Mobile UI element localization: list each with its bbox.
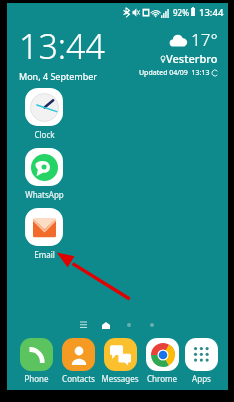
- button[interactable]: WhatsApp: [21, 148, 67, 200]
- staticText: Chrome: [147, 373, 177, 384]
- button[interactable]: Email: [21, 208, 67, 260]
- staticText: Contacts: [62, 373, 95, 384]
- button[interactable]: Home screen settings: [77, 319, 89, 331]
- button[interactable]: Page 3: [146, 319, 158, 331]
- staticText: Email: [34, 249, 55, 260]
- staticText: Vesterbro: [166, 51, 218, 66]
- button[interactable]: Messages: [99, 338, 141, 384]
- staticText: 13:44: [19, 23, 105, 69]
- staticText: Phone: [24, 373, 49, 384]
- staticText: Clock: [34, 129, 55, 140]
- button[interactable]: Page 2: [123, 319, 135, 331]
- staticText: Updated 04/09 13:13: [139, 68, 210, 78]
- button[interactable]: Chrome: [141, 338, 183, 384]
- button[interactable]: Apps: [183, 338, 220, 384]
- staticText: 13:44: [199, 6, 224, 19]
- button[interactable]: Contacts: [57, 338, 99, 384]
- staticText: 92%: [173, 7, 189, 18]
- staticText: Apps: [192, 373, 211, 384]
- button[interactable]: Clock: [21, 88, 67, 140]
- staticText: WhatsApp: [25, 189, 64, 200]
- button[interactable]: Phone: [15, 338, 57, 384]
- staticText: Messages: [101, 373, 139, 384]
- button[interactable]: Main home page: [100, 319, 112, 331]
- staticText: 17°: [191, 28, 218, 51]
- staticText: Mon, 4 September: [19, 70, 98, 82]
